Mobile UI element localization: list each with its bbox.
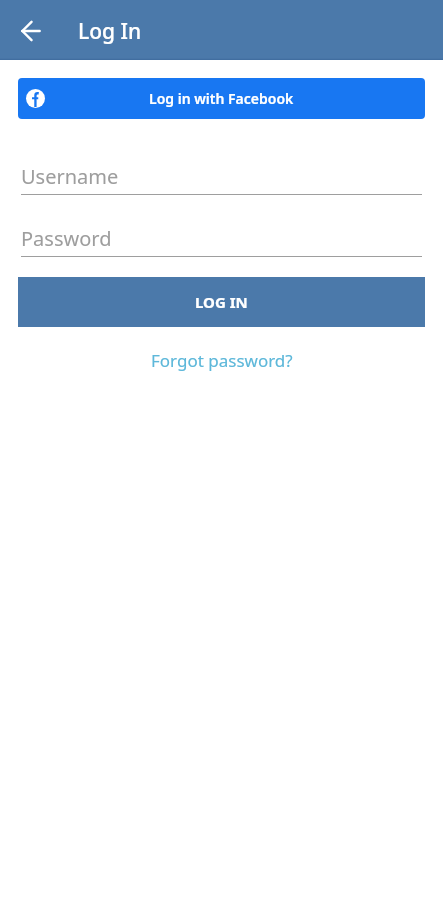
button[interactable]: Password xyxy=(21,225,422,257)
staticText: Password xyxy=(21,225,112,252)
staticText: Username xyxy=(21,163,119,190)
button[interactable]: Log in with Facebook xyxy=(18,78,425,119)
staticText: Log in with Facebook xyxy=(149,89,294,108)
staticText: Log In xyxy=(78,17,142,46)
staticText: Forgot password? xyxy=(151,349,293,372)
button[interactable]: Forgot password? xyxy=(143,347,301,374)
button[interactable]: Back xyxy=(9,9,52,52)
button[interactable]: LOG IN xyxy=(18,277,425,327)
staticText: LOG IN xyxy=(195,292,248,312)
button[interactable]: Username xyxy=(21,163,422,195)
